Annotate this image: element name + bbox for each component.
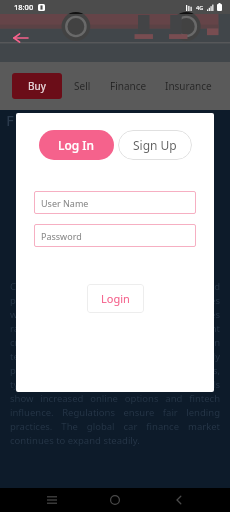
staticText: Password — [41, 230, 82, 242]
staticText: Log In — [58, 137, 95, 153]
button[interactable]: Log In — [39, 130, 114, 160]
staticText: Car loan interest rates vary by lender a… — [10, 280, 220, 447]
button[interactable]: Login — [87, 284, 144, 313]
staticText: Sell — [74, 79, 91, 93]
button[interactable]: Sell — [68, 73, 97, 99]
button[interactable]: Finance — [104, 73, 153, 99]
button[interactable]: Back — [167, 488, 191, 512]
button[interactable]: Password — [34, 224, 196, 247]
button[interactable]: Home — [103, 488, 127, 512]
staticText: F — [6, 110, 14, 130]
staticText: Insurance — [165, 79, 212, 93]
staticText: 4G — [196, 4, 204, 11]
staticText: 18:00 — [14, 2, 34, 12]
staticText: Sign Up — [133, 137, 177, 153]
staticText: Buy — [28, 79, 46, 93]
button[interactable]: User Name — [34, 191, 196, 214]
button[interactable]: Sign Up — [118, 130, 192, 160]
button[interactable]: Buy — [12, 73, 62, 99]
button[interactable]: Recent apps — [40, 488, 64, 512]
button[interactable]: Back — [8, 25, 34, 51]
staticText: Login — [101, 291, 130, 306]
button[interactable]: Insurance — [159, 73, 218, 99]
staticText: Finance — [110, 79, 147, 93]
staticText: User Name — [41, 197, 89, 209]
